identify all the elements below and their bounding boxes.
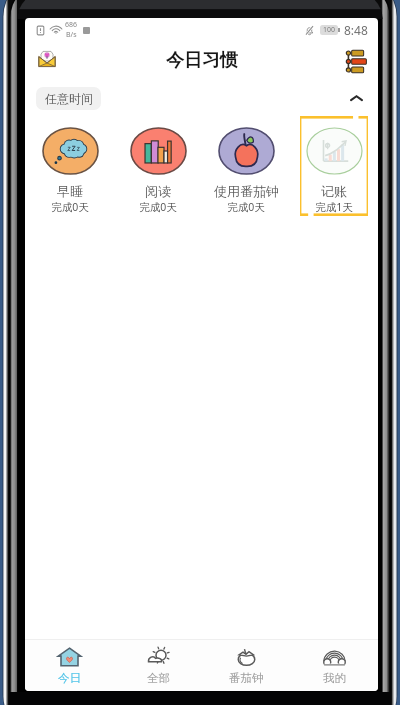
button[interactable]: 番茄钟: [202, 640, 290, 691]
staticText: 完成1天: [315, 200, 353, 214]
button[interactable]: Messages: [32, 46, 62, 76]
button[interactable]: 早睡: [36, 116, 104, 216]
button[interactable]: 今日: [25, 640, 114, 691]
staticText: 完成0天: [51, 200, 89, 214]
staticText: 任意时间: [45, 91, 93, 106]
staticText: 记账: [321, 183, 347, 199]
staticText: 我的: [323, 671, 346, 685]
staticText: 今日: [58, 671, 81, 685]
staticText: 全部: [147, 671, 170, 685]
staticText: B/s: [66, 30, 77, 40]
staticText: 使用番茄钟: [214, 183, 279, 199]
staticText: 完成0天: [139, 200, 177, 214]
button[interactable]: Collapse: [345, 87, 367, 109]
staticText: 番茄钟: [229, 671, 264, 685]
staticText: 8:48: [344, 22, 368, 38]
button[interactable]: 我的: [290, 640, 378, 691]
button[interactable]: Statistics: [341, 46, 371, 76]
staticText: 阅读: [145, 183, 171, 199]
button[interactable]: 全部: [114, 640, 202, 691]
staticText: 今日习惯: [166, 49, 238, 72]
staticText: 早睡: [57, 183, 83, 199]
staticText: 100: [323, 25, 336, 35]
button[interactable]: 使用番茄钟: [212, 116, 280, 216]
staticText: 686: [65, 20, 78, 30]
button[interactable]: 记账: [300, 116, 368, 216]
button[interactable]: 阅读: [124, 116, 192, 216]
button[interactable]: 任意时间: [36, 87, 101, 110]
staticText: 完成0天: [227, 200, 265, 214]
